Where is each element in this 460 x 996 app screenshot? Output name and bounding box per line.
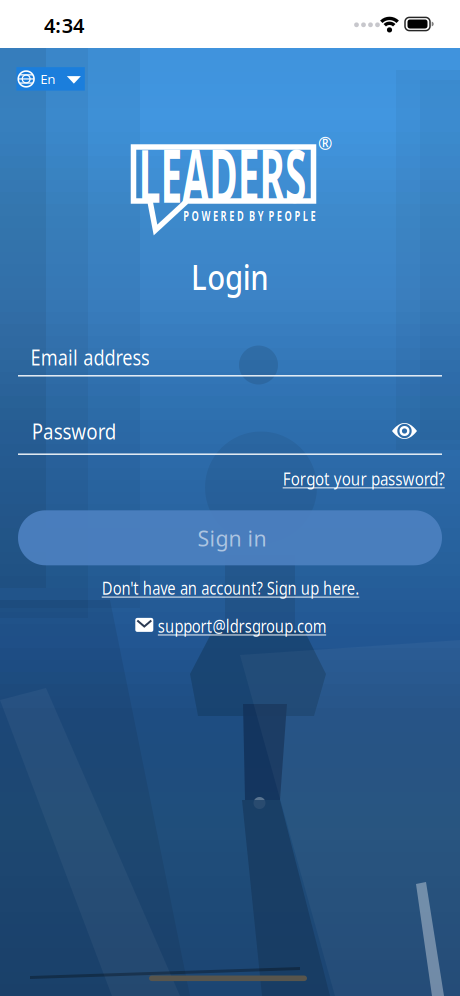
button[interactable]: Don't have an account? Sign up here. [67,575,393,600]
button[interactable]: support@ldrsgroup.com [133,612,329,638]
staticText: Password [26,417,122,445]
staticText: 4:34 [44,12,84,39]
staticText: Login [184,253,276,299]
button[interactable]: Show password [384,415,424,447]
staticText: LEADERS [64,126,380,223]
button[interactable]: Forgot your password? [264,466,460,491]
staticText: Email address [20,343,160,371]
staticText: Sign in [197,524,266,552]
button[interactable]: Sign in [18,510,442,565]
staticText: En [40,70,55,88]
staticText: ® [318,131,332,154]
button[interactable]: Change language [16,67,85,91]
staticText: Forgot your password? [264,466,460,491]
staticText: Don't have an account? Sign up here. [67,575,393,600]
staticText: support@ldrsgroup.com [135,613,348,638]
staticText: P O W E R E D B Y P E O P L E [145,206,354,225]
